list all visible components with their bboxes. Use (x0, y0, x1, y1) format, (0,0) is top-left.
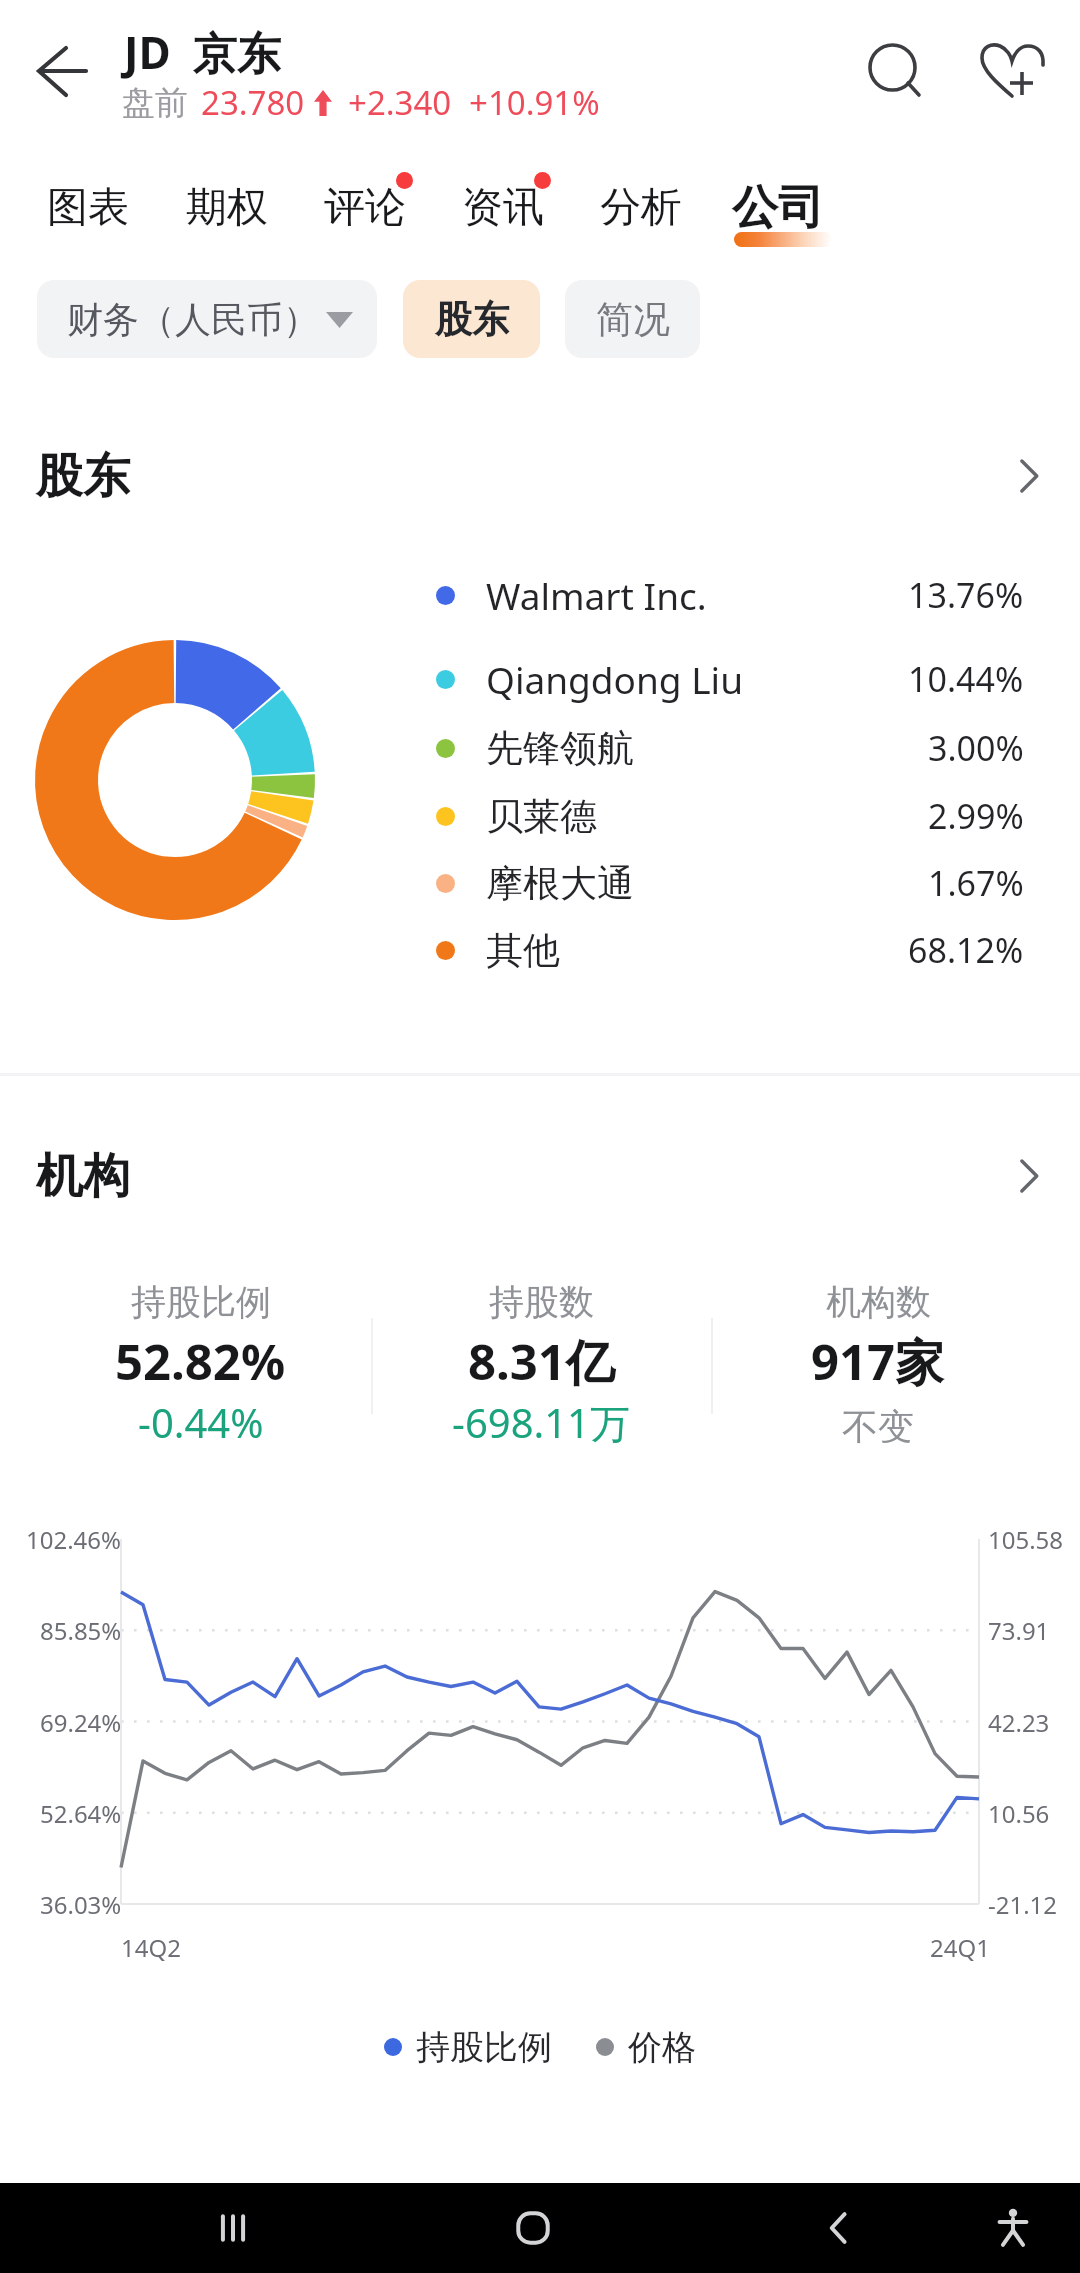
staticText: 42.23 (988, 1706, 1050, 1739)
button[interactable]: 股东 (0, 420, 1080, 532)
staticText: 3.00% (928, 725, 1024, 771)
staticText: 102.46% (26, 1523, 122, 1556)
staticText: 24Q1 (930, 1931, 990, 1964)
staticText: 23.780 (201, 80, 305, 125)
button[interactable]: 简况 (565, 280, 700, 358)
button[interactable]: 公司 (708, 152, 847, 264)
staticText: 36.03% (40, 1888, 122, 1921)
staticText: 股东 (36, 447, 130, 506)
staticText: 评论 (324, 182, 406, 234)
button[interactable]: Home (483, 2183, 583, 2273)
staticText: 摩根大通 (486, 860, 634, 907)
button[interactable]: Recent apps (183, 2183, 283, 2273)
staticText: 期权 (186, 182, 268, 234)
staticText: 52.64% (40, 1797, 122, 1830)
staticText: 10.44% (908, 656, 1024, 702)
staticText: 不变 (842, 1404, 914, 1449)
button[interactable]: 财务（人民币） (37, 280, 377, 358)
staticText: 14Q2 (121, 1931, 181, 1964)
staticText: 价格 (628, 2026, 696, 2069)
button[interactable]: Search (843, 18, 943, 118)
button[interactable]: 其他 (420, 916, 1024, 984)
button[interactable]: 评论 (301, 152, 429, 264)
staticText: 10.56 (988, 1797, 1050, 1830)
staticText: 其他 (486, 927, 560, 974)
staticText: 68.12% (908, 927, 1024, 973)
button[interactable]: 分析 (577, 152, 705, 264)
staticText: 85.85% (40, 1614, 122, 1647)
staticText: 2.99% (928, 793, 1024, 839)
button[interactable]: 资讯 (439, 152, 567, 264)
button[interactable]: Add to watchlist (962, 18, 1062, 118)
button[interactable]: Back (790, 2183, 890, 2273)
button[interactable]: 股东 (403, 280, 540, 358)
button[interactable]: Back (0, 22, 110, 128)
staticText: -698.11万 (452, 1395, 630, 1449)
staticText: 盘前 (122, 82, 188, 124)
staticText: 贝莱德 (486, 793, 597, 840)
staticText: +2.340 (348, 80, 452, 125)
staticText: 图表 (47, 182, 129, 234)
button[interactable]: 摩根大通 (420, 849, 1024, 917)
button[interactable]: 贝莱德 (420, 782, 1024, 850)
button[interactable]: Walmart Inc. (420, 561, 1024, 629)
button[interactable]: 期权 (163, 152, 291, 264)
staticText: 先锋领航 (486, 725, 634, 772)
button[interactable]: 图表 (24, 152, 152, 264)
staticText: 股东 (435, 296, 509, 343)
staticText: 资讯 (462, 182, 544, 234)
staticText: 917家 (811, 1328, 945, 1395)
staticText: 持股比例 (131, 1280, 271, 1324)
staticText: 机构 (36, 1147, 130, 1206)
staticText: 69.24% (40, 1706, 122, 1739)
staticText: 8.31亿 (468, 1328, 615, 1395)
staticText: -21.12 (988, 1888, 1058, 1921)
staticText: Qiangdong Liu (486, 654, 744, 704)
staticText: 52.82% (115, 1328, 286, 1395)
staticText: 持股比例 (416, 2026, 552, 2069)
button[interactable]: Qiangdong Liu (420, 645, 1024, 713)
staticText: -0.44% (138, 1395, 264, 1449)
staticText: 简况 (596, 296, 670, 343)
button[interactable]: 机构 (0, 1120, 1080, 1232)
staticText: 13.76% (908, 572, 1024, 618)
staticText: JD (124, 22, 171, 82)
staticText: 105.58 (988, 1523, 1064, 1556)
button[interactable]: Accessibility (963, 2183, 1063, 2273)
button[interactable]: 先锋领航 (420, 714, 1024, 782)
staticText: 公司 (732, 179, 824, 237)
staticText: 73.91 (988, 1614, 1050, 1647)
staticText: +10.91% (469, 80, 600, 125)
staticText: 持股数 (489, 1280, 594, 1324)
staticText: 机构数 (826, 1280, 931, 1324)
staticText: 财务（人民币） (67, 297, 319, 342)
staticText: 京东 (193, 27, 281, 82)
staticText: Walmart Inc. (486, 570, 707, 620)
staticText: 分析 (600, 182, 682, 234)
staticText: 1.67% (928, 860, 1024, 906)
